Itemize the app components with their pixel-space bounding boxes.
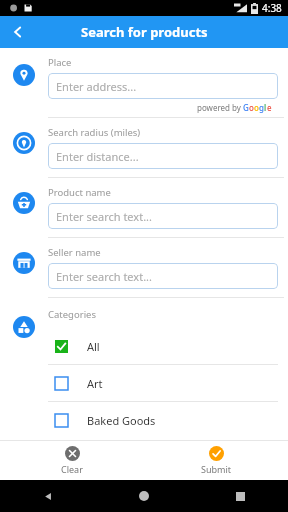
staticText: All (87, 339, 100, 354)
button[interactable]: Submit (144, 440, 288, 480)
button[interactable]: Clear (0, 440, 144, 480)
button[interactable]: Enter search text... (48, 263, 278, 289)
staticText: l (264, 102, 267, 113)
staticText: Enter distance... (56, 149, 139, 164)
staticText: Search for products (81, 23, 208, 41)
staticText: G (243, 102, 249, 113)
staticText: e (267, 102, 272, 113)
staticText: Enter search text... (56, 269, 152, 284)
staticText: Submit (201, 463, 232, 475)
staticText: Enter search text... (56, 209, 152, 224)
staticText: Place (48, 56, 72, 69)
staticText: g (259, 102, 264, 113)
button[interactable]: Art (48, 365, 278, 401)
button[interactable]: Enter distance... (48, 143, 278, 169)
staticText: Clear (61, 463, 83, 475)
button[interactable]: Baked Goods (48, 402, 278, 438)
button[interactable]: Enter search text... (48, 203, 278, 229)
button[interactable]: Recent apps (192, 480, 288, 512)
staticText: Search radius (miles) (48, 126, 141, 139)
staticText: Baked Goods (87, 413, 156, 428)
staticText: Art (87, 376, 103, 391)
staticText: powered by (197, 102, 243, 113)
staticText: Seller name (48, 246, 101, 259)
staticText: o (249, 102, 254, 113)
button[interactable]: Home (96, 480, 192, 512)
button[interactable]: Enter address... (48, 73, 278, 99)
button[interactable]: Back (0, 480, 96, 512)
staticText: Enter address... (56, 79, 137, 94)
staticText: 4:38 (262, 1, 282, 15)
staticText: o (254, 102, 259, 113)
staticText: Product name (48, 186, 111, 199)
button[interactable]: All (48, 328, 278, 364)
button[interactable]: Back (0, 16, 36, 48)
staticText: Categories (48, 308, 96, 321)
